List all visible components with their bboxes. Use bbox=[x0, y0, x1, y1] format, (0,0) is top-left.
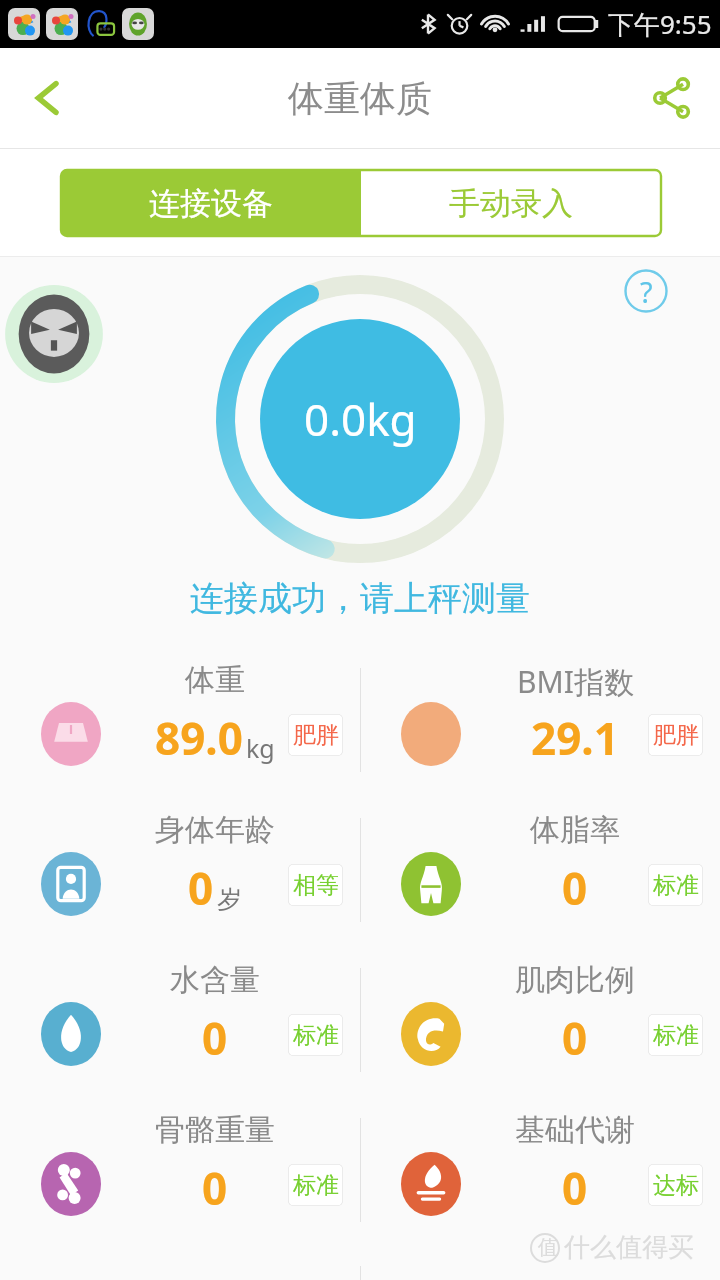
button[interactable]: 标准 bbox=[648, 864, 703, 906]
staticText: 0.0kg bbox=[304, 389, 417, 449]
staticText: 岁 bbox=[217, 884, 242, 915]
staticText: ? bbox=[640, 272, 653, 311]
staticText: 标准 bbox=[293, 1021, 339, 1050]
button[interactable]: BMI指数 bbox=[360, 645, 720, 795]
staticText: 标准 bbox=[653, 871, 699, 900]
button[interactable]: 标准 bbox=[288, 1164, 343, 1206]
button[interactable]: 达标 bbox=[648, 1164, 703, 1206]
staticText: 手动录入 bbox=[449, 184, 573, 223]
staticText: 值 bbox=[538, 1235, 558, 1260]
staticText: 0 bbox=[562, 858, 588, 918]
button[interactable]: 相等 bbox=[288, 864, 343, 906]
button[interactable]: 标准 bbox=[288, 1014, 343, 1056]
staticText: 肌肉比例 bbox=[515, 961, 635, 999]
staticText: 身体年龄 bbox=[155, 811, 275, 849]
staticText: 89.0 bbox=[155, 708, 243, 768]
staticText: 0 bbox=[562, 1158, 588, 1218]
button[interactable]: 标准 bbox=[648, 1014, 703, 1056]
staticText: 什么值得买 bbox=[564, 1231, 694, 1264]
staticText: 0 bbox=[562, 1008, 588, 1068]
staticText: 体重体质 bbox=[288, 76, 432, 121]
button[interactable]: Assistant bbox=[2, 282, 106, 386]
staticText: 体重 bbox=[185, 661, 245, 699]
button[interactable]: Help bbox=[624, 269, 668, 313]
staticText: 体脂率 bbox=[530, 811, 620, 849]
staticText: 相等 bbox=[293, 871, 339, 900]
staticText: 下午9:55 bbox=[608, 6, 712, 42]
button[interactable]: 体重 bbox=[0, 645, 360, 795]
staticText: 基础代谢 bbox=[515, 1111, 635, 1149]
staticText: 标准 bbox=[293, 1171, 339, 1200]
button[interactable]: 身体年龄 bbox=[0, 795, 360, 945]
staticText: 连接设备 bbox=[149, 184, 273, 223]
staticText: 0 bbox=[188, 858, 214, 918]
staticText: kg bbox=[246, 731, 275, 765]
button[interactable]: 肥胖 bbox=[288, 714, 343, 756]
staticText: 标准 bbox=[653, 1021, 699, 1050]
button[interactable]: 肥胖 bbox=[648, 714, 703, 756]
button[interactable]: 水含量 bbox=[0, 945, 360, 1095]
button[interactable]: 基础代谢 bbox=[360, 1095, 720, 1245]
button[interactable]: Back bbox=[0, 48, 96, 148]
staticText: 骨骼重量 bbox=[155, 1111, 275, 1149]
staticText: 肥胖 bbox=[653, 721, 699, 750]
staticText: 29.1 bbox=[531, 708, 619, 768]
button[interactable]: 0.0kg bbox=[260, 319, 460, 519]
staticText: 0 bbox=[202, 1158, 228, 1218]
button[interactable]: 手动录入 bbox=[361, 170, 661, 236]
button[interactable]: 肌肉比例 bbox=[360, 945, 720, 1095]
staticText: 达标 bbox=[653, 1171, 699, 1200]
button[interactable]: Share bbox=[624, 48, 720, 148]
staticText: 0 bbox=[202, 1008, 228, 1068]
staticText: 肥胖 bbox=[293, 721, 339, 750]
staticText: BMI指数 bbox=[517, 661, 634, 702]
button[interactable]: 体脂率 bbox=[360, 795, 720, 945]
staticText: 水含量 bbox=[170, 961, 260, 999]
button[interactable]: 骨骼重量 bbox=[0, 1095, 360, 1245]
button[interactable]: 连接设备 bbox=[61, 170, 361, 236]
staticText: 连接成功，请上秤测量 bbox=[190, 577, 530, 620]
